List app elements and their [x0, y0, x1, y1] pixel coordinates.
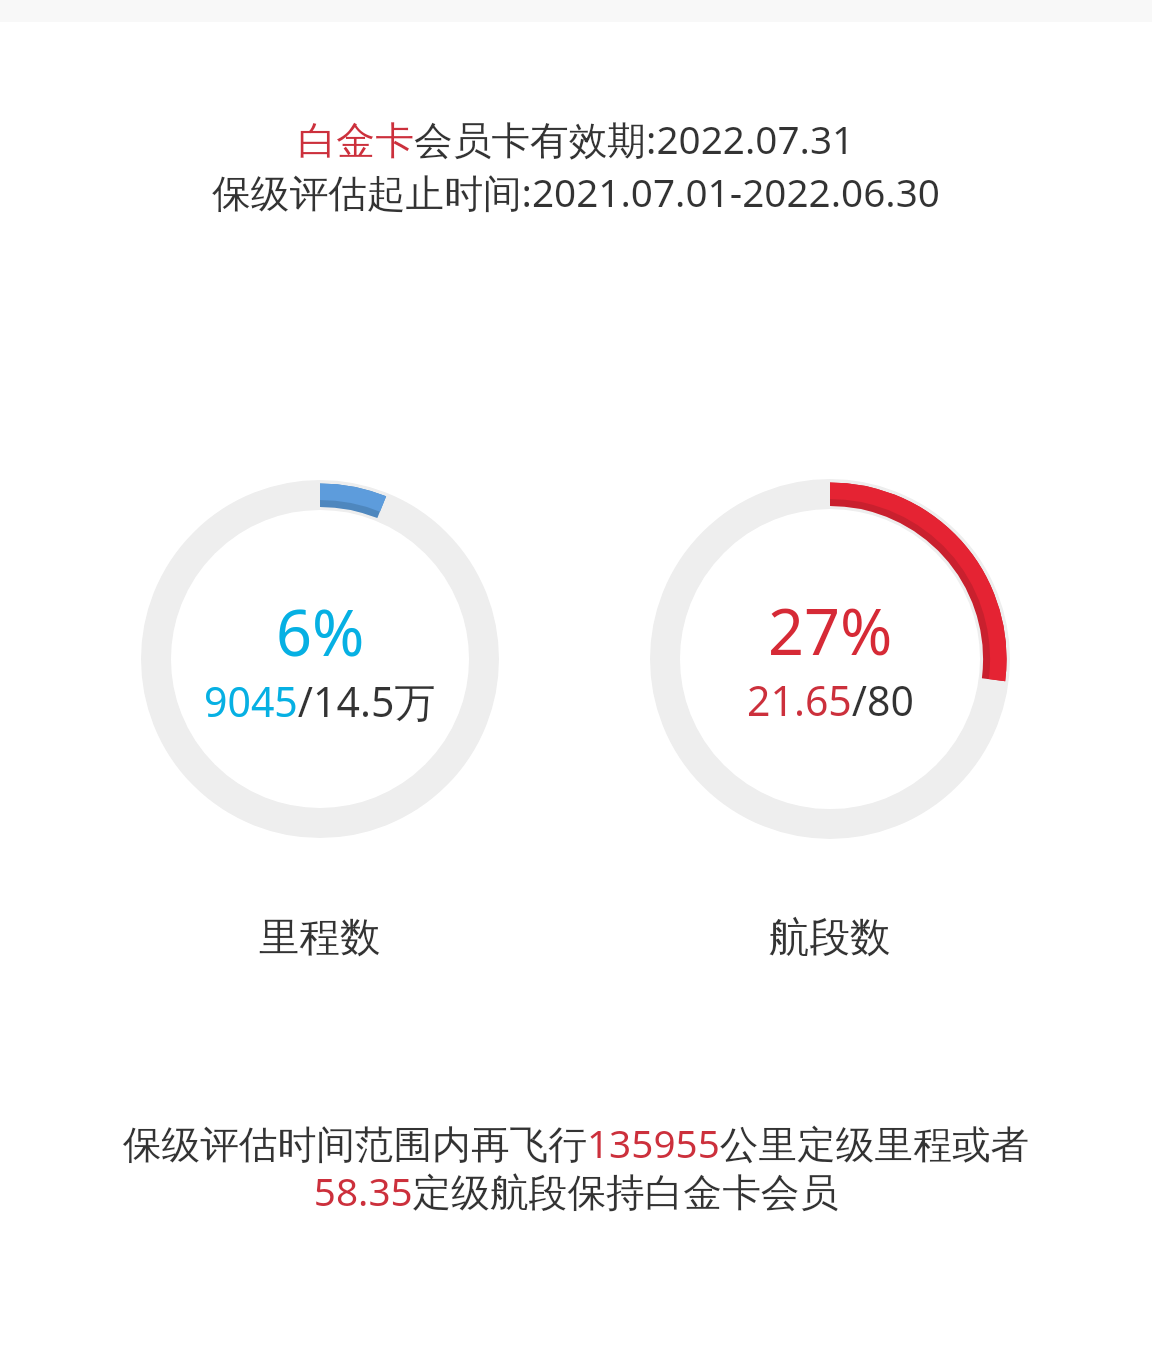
staticText: 21.65/80: [747, 672, 914, 728]
button[interactable]: 里程数进度 6%: [141, 480, 499, 838]
staticText: 27%: [768, 588, 893, 674]
staticText: 保级评估起止时间:2021.07.01-2022.06.30: [0, 166, 1152, 219]
staticText: 6%: [276, 589, 365, 675]
button[interactable]: 航段数: [650, 912, 1010, 963]
button[interactable]: 航段数进度 27%: [650, 479, 1010, 839]
staticText: 航段数: [769, 912, 891, 963]
button[interactable]: 里程数: [141, 912, 499, 963]
staticText: 保级评估时间范围内再飞行135955公里定级里程或者58.35定级航段保持白金卡…: [106, 1117, 1046, 1217]
staticText: 白金卡会员卡有效期:2022.07.31: [0, 113, 1152, 166]
staticText: 9045/14.5万: [204, 673, 436, 729]
staticText: 里程数: [259, 912, 381, 963]
